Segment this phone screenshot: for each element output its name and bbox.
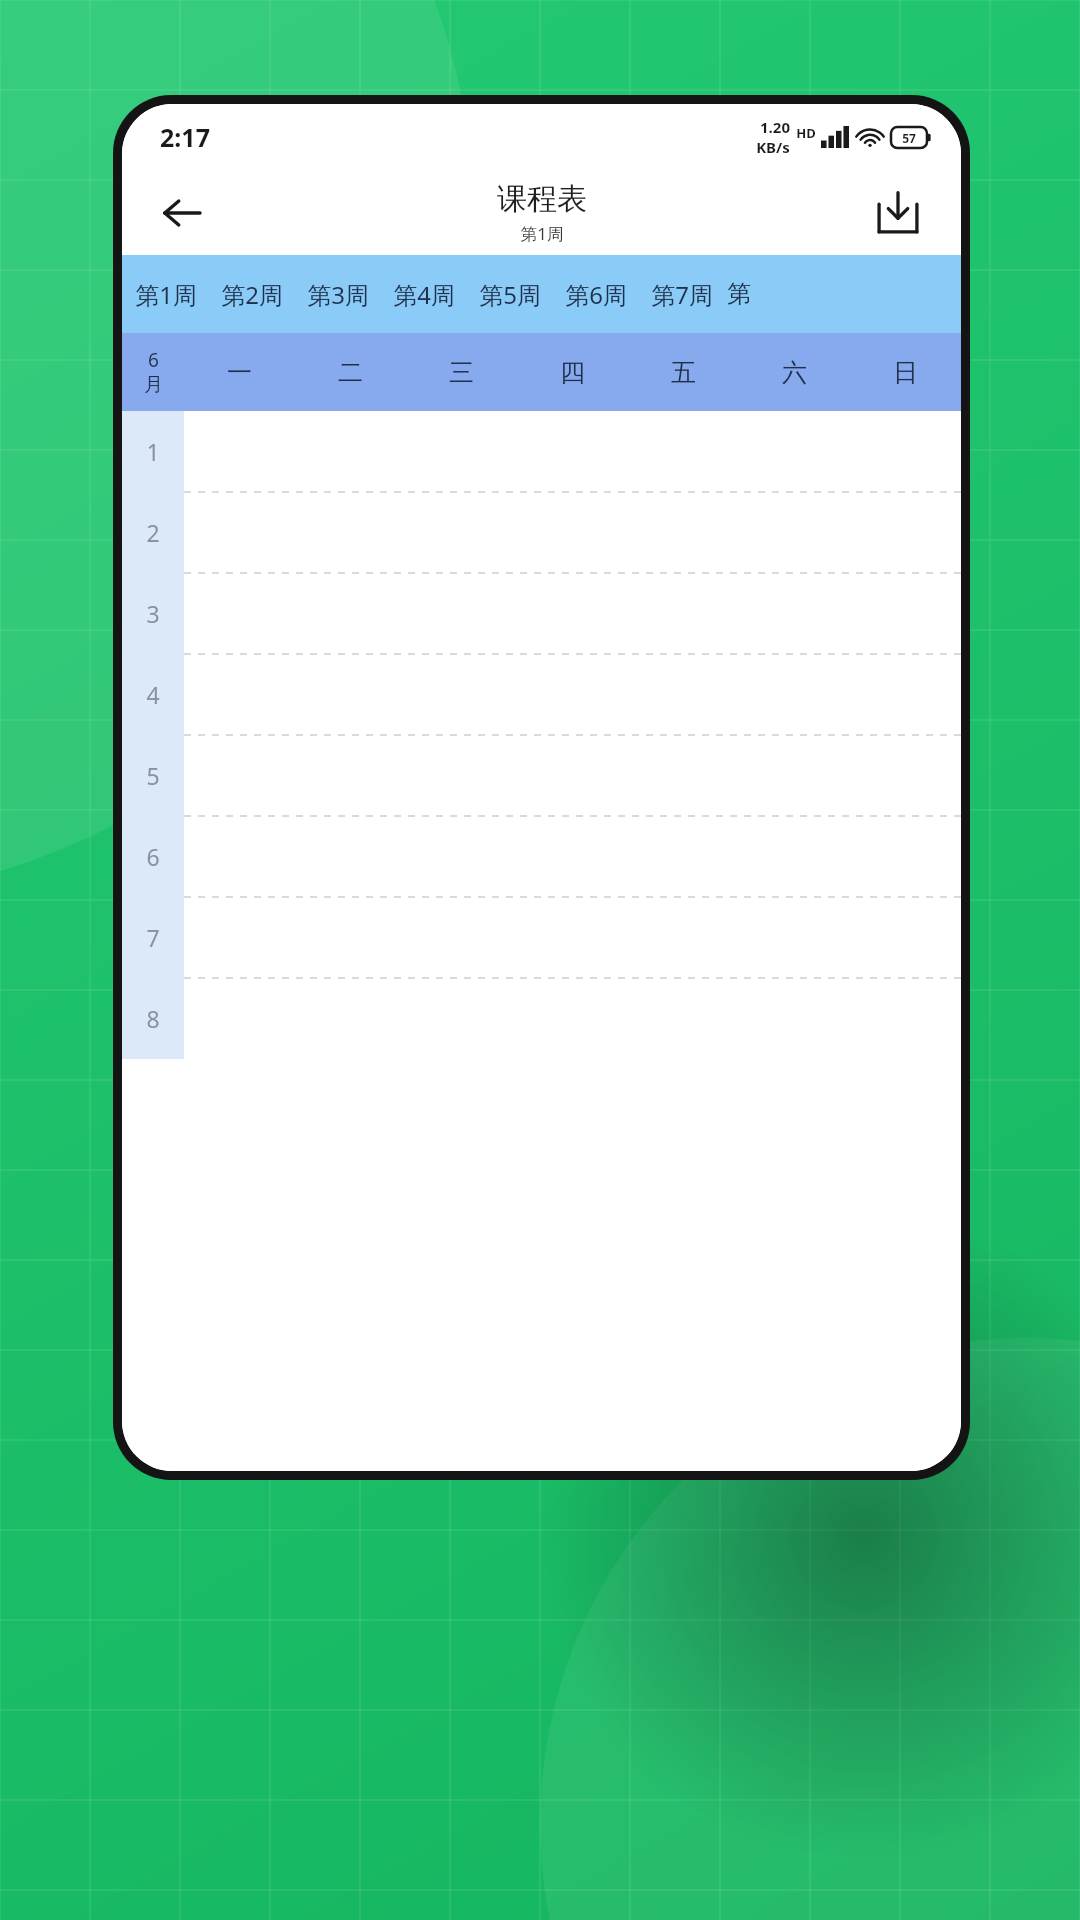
button[interactable]: 日 [850, 333, 961, 411]
button[interactable]: 第5周 [467, 255, 553, 333]
button[interactable] [184, 816, 295, 897]
button[interactable] [517, 492, 628, 573]
button[interactable] [184, 573, 295, 654]
button[interactable] [406, 897, 517, 978]
staticText: 2 [146, 517, 160, 548]
staticText: 三 [449, 357, 474, 388]
button[interactable] [184, 654, 295, 735]
button[interactable]: 第2周 [209, 255, 295, 333]
staticText: 五 [671, 357, 696, 388]
button[interactable] [517, 897, 628, 978]
button[interactable] [739, 573, 850, 654]
button[interactable]: 三 [406, 333, 517, 411]
button[interactable] [406, 654, 517, 735]
button[interactable] [184, 735, 295, 816]
button[interactable] [184, 492, 295, 573]
button[interactable] [628, 897, 739, 978]
button[interactable] [739, 654, 850, 735]
button[interactable] [628, 735, 739, 816]
button[interactable] [739, 492, 850, 573]
button[interactable] [406, 573, 517, 654]
staticText: 1 [146, 436, 160, 467]
button[interactable] [517, 654, 628, 735]
staticText: 8 [146, 1003, 160, 1034]
staticText: 第7周 [651, 278, 713, 311]
button[interactable]: 五 [628, 333, 739, 411]
button[interactable] [850, 492, 961, 573]
button[interactable] [295, 816, 406, 897]
button[interactable]: 第1周 [122, 255, 209, 333]
button[interactable] [628, 816, 739, 897]
button[interactable] [739, 735, 850, 816]
button[interactable] [295, 654, 406, 735]
staticText: 六 [782, 357, 807, 388]
staticText: 3 [146, 598, 160, 629]
button[interactable] [406, 492, 517, 573]
button[interactable]: Import timetable [861, 176, 935, 250]
button[interactable] [517, 573, 628, 654]
button[interactable] [850, 816, 961, 897]
staticText: HD [796, 124, 816, 142]
button[interactable]: 第 [725, 255, 961, 333]
button[interactable] [295, 897, 406, 978]
staticText: 第4周 [393, 278, 455, 311]
staticText: 第6周 [565, 278, 627, 311]
button[interactable]: 第4周 [381, 255, 467, 333]
button[interactable] [295, 573, 406, 654]
staticText: 57 [902, 130, 916, 146]
button[interactable] [517, 735, 628, 816]
staticText: 7 [146, 922, 160, 953]
button[interactable]: 六 [739, 333, 850, 411]
button[interactable] [295, 735, 406, 816]
button[interactable] [406, 816, 517, 897]
button[interactable]: 第7周 [639, 255, 725, 333]
staticText: 2:17 [160, 120, 210, 154]
button[interactable] [406, 735, 517, 816]
button[interactable] [517, 816, 628, 897]
button[interactable] [850, 654, 961, 735]
button[interactable]: 第3周 [295, 255, 381, 333]
staticText: KB/s [756, 137, 790, 157]
staticText: 月 [144, 373, 163, 397]
button[interactable]: 四 [517, 333, 628, 411]
button[interactable]: 第6周 [553, 255, 639, 333]
staticText: 第1周 [520, 222, 564, 245]
button[interactable] [184, 897, 295, 978]
staticText: 5 [146, 760, 160, 791]
staticText: 日 [893, 357, 918, 388]
button[interactable] [739, 816, 850, 897]
staticText: 1.20 [760, 117, 790, 137]
staticText: 四 [560, 357, 585, 388]
button[interactable] [628, 654, 739, 735]
staticText: 第 [727, 279, 751, 309]
button[interactable] [628, 492, 739, 573]
staticText: 6 [148, 347, 159, 373]
button[interactable] [628, 573, 739, 654]
button[interactable] [850, 573, 961, 654]
button[interactable] [295, 492, 406, 573]
staticText: 二 [338, 357, 363, 388]
staticText: 第3周 [307, 278, 369, 311]
button[interactable]: 一 [184, 333, 295, 411]
button[interactable] [850, 735, 961, 816]
button[interactable] [850, 897, 961, 978]
button[interactable] [739, 897, 850, 978]
staticText: 课程表 [497, 180, 587, 218]
staticText: 6 [146, 841, 160, 872]
button[interactable]: 二 [295, 333, 406, 411]
button[interactable]: Back [144, 175, 220, 251]
